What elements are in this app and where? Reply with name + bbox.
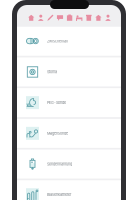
button[interactable]: Blasenkatheter [17,180,121,200]
staticText: Blasenkatheter [47,192,71,197]
button[interactable]: Sondennahrung [17,150,121,179]
staticText: Zwischenfall [47,39,68,43]
button[interactable]: Magensonde [17,119,121,148]
button[interactable]: Kategorie [86,13,92,23]
button[interactable]: Kategorie [105,13,111,23]
staticText: Stoma [47,70,57,74]
staticText: Sondennahrung [47,162,72,166]
button[interactable]: Kategorie [47,13,54,23]
staticText: PEG-Sonde [47,100,66,105]
button[interactable]: Kategorie [76,13,82,23]
button[interactable]: Kategorie [57,13,63,23]
button[interactable]: PEG-Sonde [17,88,121,117]
button[interactable]: Zwischenfall [17,27,121,56]
button[interactable]: Stoma [17,57,121,86]
button[interactable]: Kategorie [28,13,34,23]
button[interactable]: Kategorie [95,13,102,23]
button[interactable]: Kategorie [38,13,44,23]
staticText: Magensonde [47,131,68,136]
button[interactable]: Kategorie [66,13,73,23]
